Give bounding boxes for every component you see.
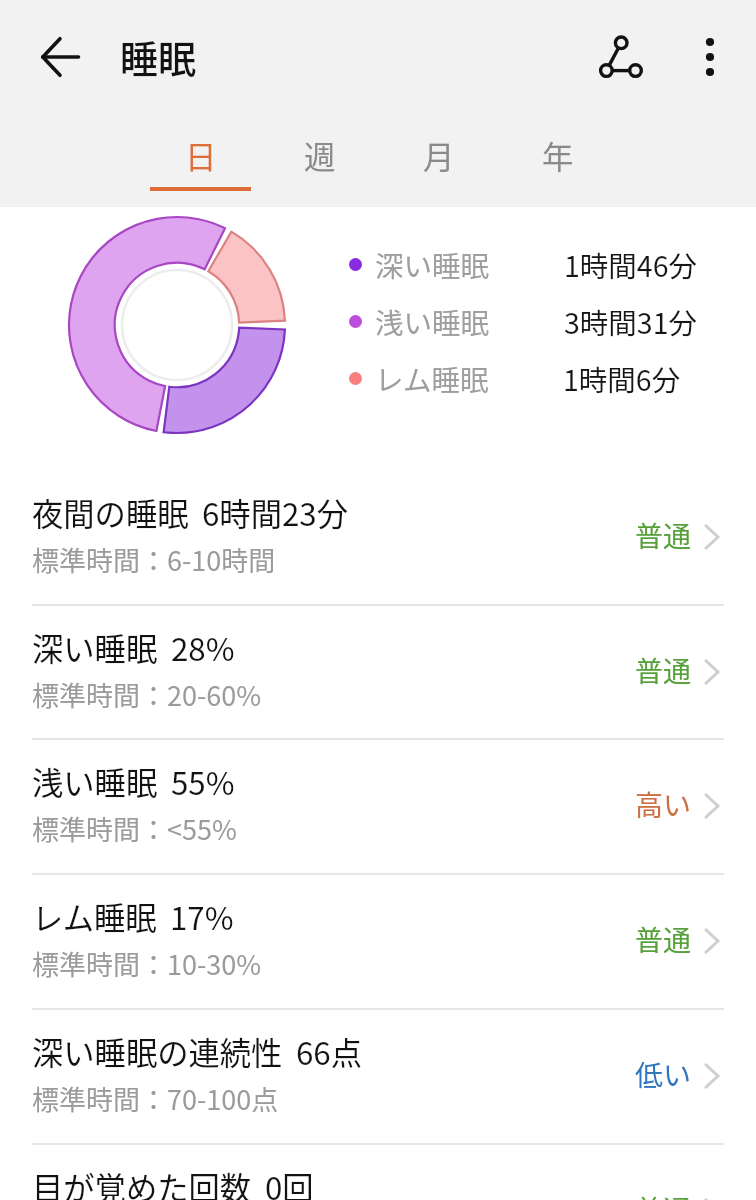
button[interactable]: 深い睡眠の連続性: [0, 1010, 756, 1143]
staticText: 普通: [635, 650, 692, 691]
button[interactable]: レム睡眠: [0, 875, 756, 1008]
staticText: 66点: [296, 1029, 363, 1074]
button[interactable]: 深い睡眠: [0, 606, 756, 739]
button[interactable]: 浅い睡眠: [0, 740, 756, 873]
staticText: 標準時間：<55%: [32, 809, 237, 848]
button[interactable]: More options: [668, 15, 752, 99]
staticText: 3時間31分: [564, 301, 697, 342]
staticText: 目が覚めた回数: [32, 1164, 252, 1200]
staticText: 6時間23分: [202, 490, 349, 535]
staticText: 0回: [265, 1164, 314, 1200]
staticText: 普通: [635, 515, 692, 556]
button[interactable]: 日: [150, 113, 251, 207]
button[interactable]: Share: [573, 15, 657, 99]
staticText: 深い睡眠: [32, 625, 158, 670]
staticText: レム睡眠: [32, 894, 157, 939]
button[interactable]: 週: [269, 113, 370, 207]
staticText: 1時間46分: [564, 244, 697, 285]
staticText: 標準時間：10-30%: [32, 944, 262, 983]
button[interactable]: Back: [20, 17, 100, 97]
button[interactable]: 年: [507, 113, 608, 207]
staticText: 普通: [635, 1189, 692, 1200]
staticText: 1時間6分: [563, 358, 681, 399]
staticText: 28%: [171, 625, 235, 670]
staticText: 標準時間：6-10時間: [32, 540, 276, 579]
staticText: 週: [304, 132, 336, 178]
staticText: 浅い睡眠: [375, 301, 490, 342]
staticText: 高い: [635, 784, 692, 825]
staticText: 17%: [170, 894, 234, 939]
button[interactable]: 月: [388, 113, 489, 207]
staticText: 年: [542, 132, 574, 178]
staticText: 標準時間：70-100点: [32, 1079, 279, 1118]
button[interactable]: 夜間の睡眠: [0, 471, 756, 604]
staticText: 55%: [171, 759, 235, 804]
staticText: 月: [423, 132, 455, 178]
staticText: 低い: [635, 1054, 692, 1095]
staticText: 日: [185, 132, 217, 178]
staticText: 睡眠: [120, 29, 197, 84]
button[interactable]: 目が覚めた回数: [0, 1145, 756, 1200]
staticText: レム睡眠: [375, 358, 489, 399]
staticText: 夜間の睡眠: [32, 490, 189, 535]
staticText: 普通: [635, 919, 692, 960]
staticText: 標準時間：20-60%: [32, 675, 262, 714]
staticText: 深い睡眠: [375, 244, 490, 285]
staticText: 浅い睡眠: [32, 759, 158, 804]
staticText: 深い睡眠の連続性: [32, 1029, 283, 1074]
